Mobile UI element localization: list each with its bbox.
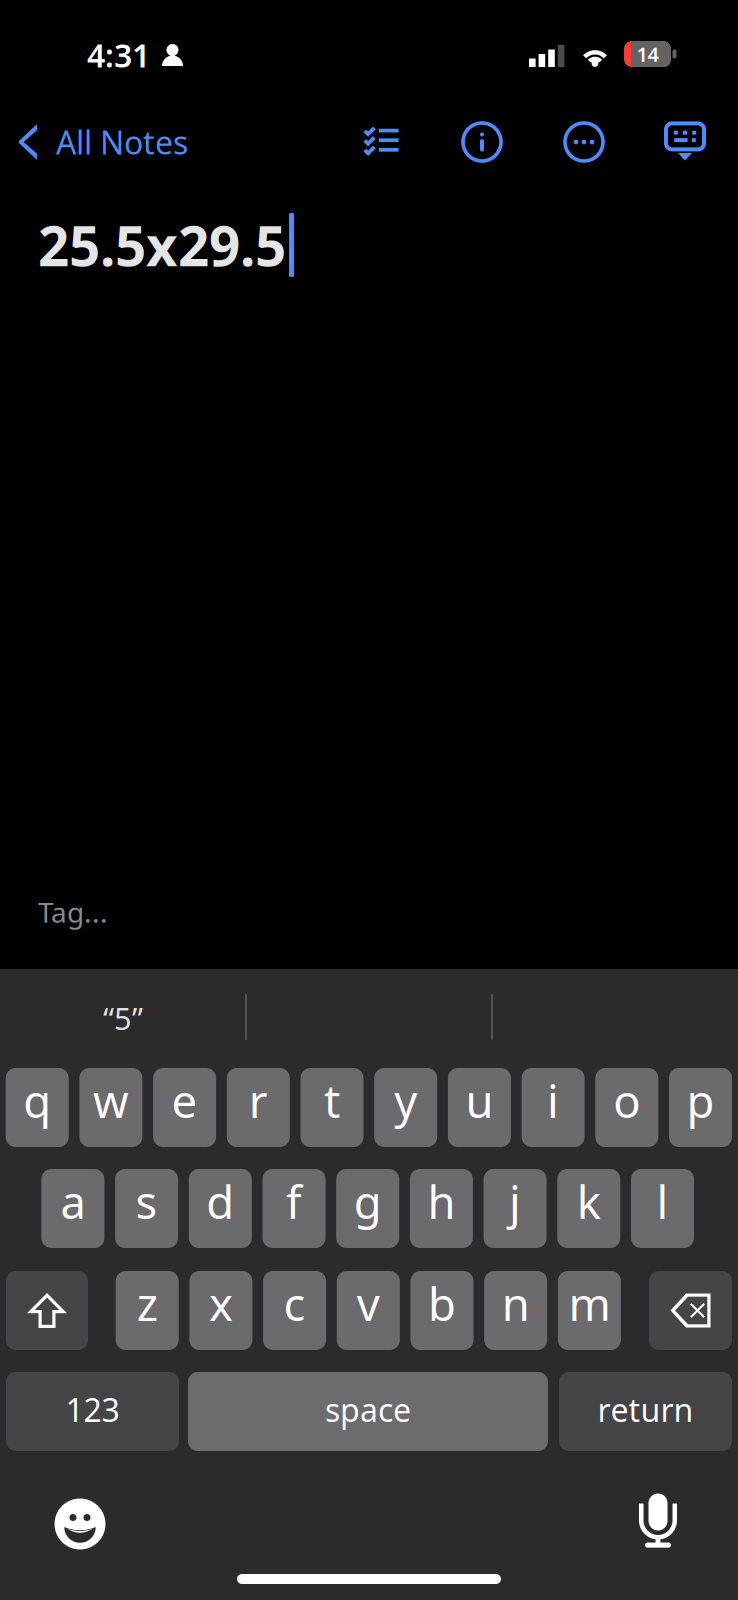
staticText: g	[354, 1171, 382, 1232]
button[interactable]: q	[6, 1068, 69, 1147]
staticText: m	[568, 1273, 610, 1334]
staticText: q	[23, 1070, 51, 1131]
button[interactable]: t	[300, 1068, 363, 1147]
staticText: p	[686, 1070, 714, 1131]
staticText: 14	[636, 41, 658, 67]
button[interactable]: space	[188, 1372, 548, 1451]
button[interactable]: w	[79, 1068, 142, 1147]
staticText: s	[136, 1171, 158, 1232]
staticText: return	[597, 1388, 693, 1431]
button[interactable]: l	[631, 1169, 694, 1248]
button[interactable]: k	[557, 1169, 620, 1248]
staticText: i	[547, 1070, 559, 1131]
staticText: e	[172, 1070, 198, 1131]
button[interactable]: j	[484, 1169, 547, 1248]
staticText: All Notes	[56, 121, 188, 163]
staticText: “5”	[103, 998, 143, 1038]
staticText: f	[286, 1171, 302, 1232]
staticText: 4:31	[87, 34, 150, 76]
staticText: k	[577, 1171, 601, 1232]
staticText: u	[465, 1070, 493, 1131]
button[interactable]: Emoji	[40, 1484, 120, 1564]
staticText: d	[206, 1171, 234, 1232]
button[interactable]: z	[116, 1271, 179, 1350]
button[interactable]: return	[559, 1372, 732, 1451]
button[interactable]: e	[153, 1068, 216, 1147]
staticText: 25.5x29.5	[38, 209, 286, 281]
staticText: c	[284, 1273, 306, 1334]
button[interactable]: i	[522, 1068, 585, 1147]
button[interactable]: Note Info	[442, 102, 522, 182]
staticText: w	[93, 1070, 129, 1131]
staticText: n	[502, 1273, 530, 1334]
button[interactable]: p	[669, 1068, 732, 1147]
button[interactable]: More	[544, 102, 624, 182]
staticText: y	[394, 1070, 417, 1131]
staticText: x	[209, 1273, 233, 1334]
button[interactable]: o	[595, 1068, 658, 1147]
button[interactable]: a	[41, 1169, 104, 1248]
button[interactable]: c	[263, 1271, 326, 1350]
staticText: v	[357, 1273, 380, 1334]
button[interactable]: Shift	[6, 1271, 88, 1350]
button[interactable]: y	[374, 1068, 437, 1147]
button[interactable]: v	[337, 1271, 400, 1350]
staticText: j	[509, 1171, 521, 1232]
button[interactable]: r	[227, 1068, 290, 1147]
staticText: o	[613, 1070, 640, 1131]
button[interactable]: b	[410, 1271, 473, 1350]
button[interactable]: 123	[6, 1372, 179, 1451]
button[interactable]: f	[262, 1169, 325, 1248]
staticText: 123	[65, 1388, 119, 1431]
button[interactable]: All Notes	[9, 111, 259, 173]
button[interactable]: u	[448, 1068, 511, 1147]
staticText: space	[325, 1388, 411, 1431]
staticText: b	[428, 1273, 456, 1334]
button[interactable]: s	[115, 1169, 178, 1248]
staticText: Tag...	[38, 893, 108, 931]
staticText: l	[656, 1171, 668, 1232]
button[interactable]: Dictate	[618, 1481, 698, 1561]
staticText: t	[324, 1070, 340, 1131]
button[interactable]: h	[410, 1169, 473, 1248]
button[interactable]: n	[484, 1271, 547, 1350]
staticText: h	[427, 1171, 455, 1232]
staticText: a	[60, 1171, 85, 1232]
staticText: r	[249, 1070, 268, 1131]
button[interactable]: g	[336, 1169, 399, 1248]
button[interactable]: Hide Keyboard	[645, 102, 725, 182]
button[interactable]: x	[189, 1271, 252, 1350]
button[interactable]: m	[558, 1271, 621, 1350]
button[interactable]: Checklist	[341, 102, 421, 182]
staticText: z	[137, 1273, 158, 1334]
button[interactable]: Delete	[649, 1271, 732, 1350]
button[interactable]: d	[189, 1169, 252, 1248]
